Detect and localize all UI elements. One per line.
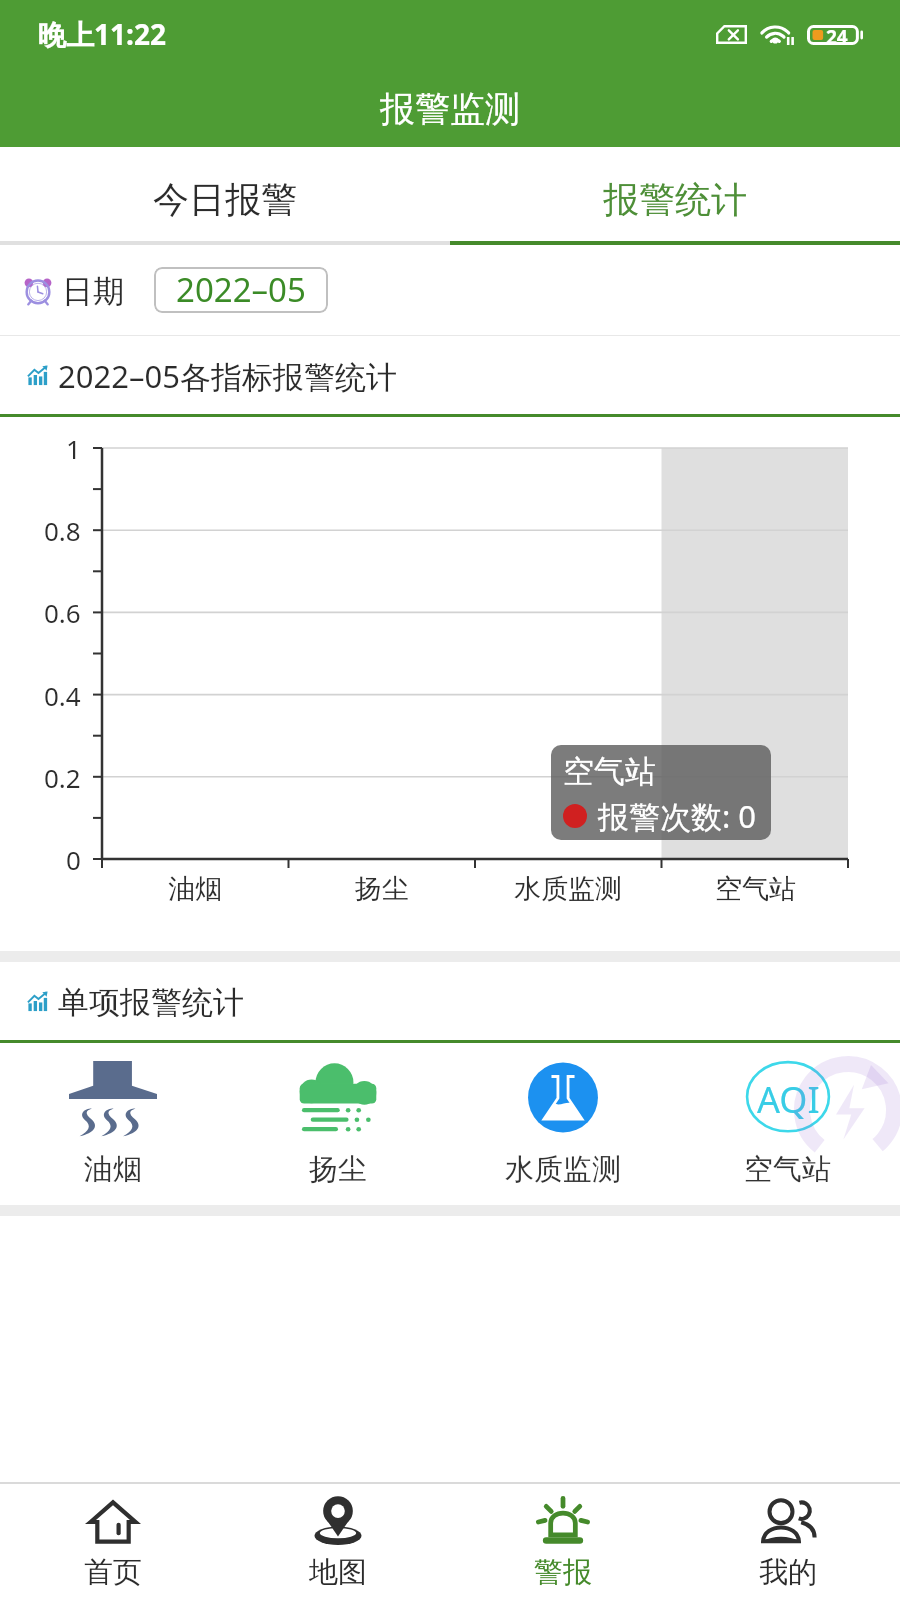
button[interactable]: 首页: [0, 1484, 225, 1600]
button[interactable]: 报警统计: [450, 147, 900, 241]
staticText: 油烟: [84, 1151, 142, 1188]
staticText: 2022–05各指标报警统计: [58, 355, 397, 397]
staticText: 报警监测: [380, 87, 520, 131]
button[interactable]: AQI: [675, 1043, 900, 1205]
staticText: 今日报警: [153, 177, 297, 222]
staticText: 报警次数: 0: [598, 795, 757, 837]
staticText: 空气站: [563, 752, 656, 791]
staticText: 0.4: [44, 678, 81, 713]
button[interactable]: 油烟: [0, 1043, 225, 1205]
staticText: 2022–05: [176, 267, 306, 312]
button[interactable]: 扬尘: [225, 1043, 450, 1205]
staticText: 水质监测: [505, 1151, 621, 1188]
staticText: 空气站: [744, 1151, 831, 1188]
staticText: 24: [826, 24, 848, 44]
button[interactable]: 水质监测: [450, 1043, 675, 1205]
staticText: 日期: [62, 272, 124, 311]
staticText: 地图: [309, 1554, 367, 1591]
staticText: 我的: [759, 1554, 817, 1591]
button[interactable]: 我的: [675, 1484, 900, 1600]
staticText: 1: [66, 431, 81, 466]
button[interactable]: 2022–05: [154, 267, 328, 313]
staticText: 首页: [84, 1554, 142, 1591]
staticText: AQI: [757, 1075, 820, 1124]
staticText: 0.6: [44, 595, 81, 630]
button[interactable]: 警报: [450, 1484, 675, 1600]
staticText: 空气站: [715, 872, 796, 906]
staticText: 水质监测: [514, 872, 622, 906]
staticText: 扬尘: [355, 872, 409, 906]
staticText: 单项报警统计: [58, 983, 244, 1022]
staticText: 报警统计: [603, 177, 747, 222]
staticText: 0: [66, 842, 81, 877]
staticText: 警报: [534, 1554, 592, 1591]
button[interactable]: 地图: [225, 1484, 450, 1600]
staticText: 0.8: [44, 513, 81, 548]
button[interactable]: 今日报警: [0, 147, 450, 241]
staticText: 油烟: [168, 872, 222, 906]
staticText: 0.2: [44, 760, 81, 795]
staticText: 扬尘: [309, 1151, 367, 1188]
staticText: 晚上11:22: [38, 15, 166, 53]
